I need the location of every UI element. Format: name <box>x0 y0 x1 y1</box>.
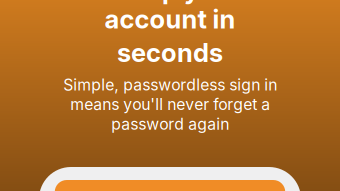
staticText: seconds <box>117 37 223 68</box>
staticText: Simple, passwordless sign in means you'l… <box>63 75 277 133</box>
button[interactable]: Continue <box>55 180 285 191</box>
staticText: Set up your <box>99 0 241 5</box>
staticText: account in <box>104 4 235 35</box>
